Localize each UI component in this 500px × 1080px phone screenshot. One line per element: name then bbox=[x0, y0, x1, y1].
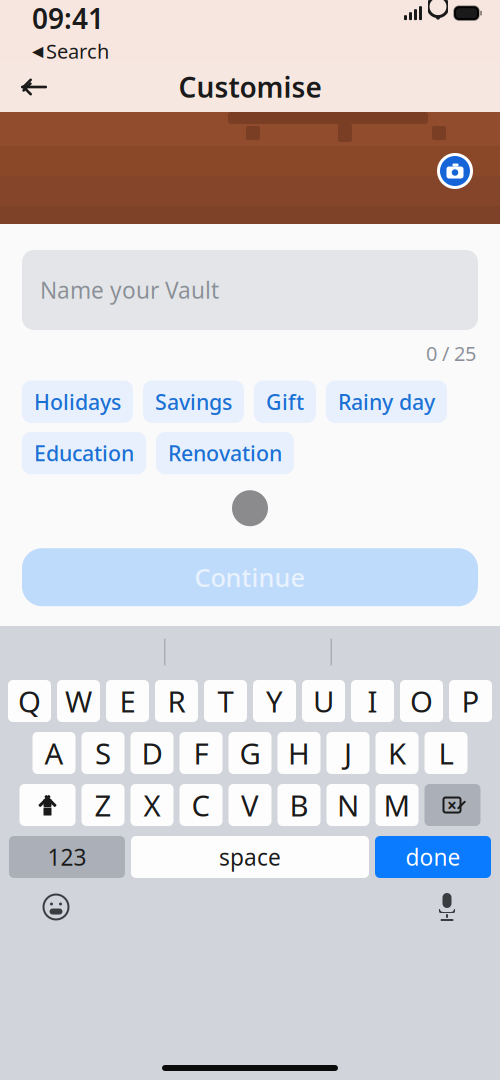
staticText: Q bbox=[18, 681, 41, 720]
staticText: 09:41 bbox=[32, 0, 104, 37]
button[interactable]: Holidays bbox=[22, 381, 133, 423]
staticText: Customise bbox=[178, 68, 321, 106]
staticText: Continue bbox=[194, 560, 305, 594]
staticText: Z bbox=[94, 785, 111, 824]
button[interactable]: U bbox=[302, 680, 345, 722]
staticText: N bbox=[337, 785, 359, 824]
button[interactable]: Name your Vault bbox=[22, 250, 478, 330]
staticText: 0 / 25 bbox=[426, 340, 476, 367]
button[interactable]: Education bbox=[22, 432, 146, 474]
button[interactable]: Z bbox=[81, 784, 124, 826]
button[interactable]: R bbox=[155, 680, 198, 722]
button[interactable]: P bbox=[449, 680, 492, 722]
button[interactable]: Shift bbox=[19, 784, 75, 826]
button[interactable]: Emoji bbox=[42, 893, 70, 921]
staticText: M bbox=[383, 785, 410, 824]
staticText: A bbox=[44, 733, 63, 772]
button[interactable]: D bbox=[130, 732, 173, 774]
staticText: B bbox=[289, 785, 308, 824]
button[interactable]: V bbox=[228, 784, 271, 826]
button[interactable]: Delete bbox=[424, 784, 480, 826]
button[interactable]: E bbox=[106, 680, 149, 722]
button[interactable]: J bbox=[326, 732, 369, 774]
button[interactable]: B bbox=[277, 784, 320, 826]
staticText: Education bbox=[34, 439, 134, 467]
button[interactable]: Savings bbox=[143, 381, 244, 423]
staticText: Rainy day bbox=[338, 388, 435, 416]
button[interactable]: M bbox=[375, 784, 418, 826]
button[interactable]: K bbox=[375, 732, 418, 774]
button[interactable]: W bbox=[57, 680, 100, 722]
staticText: × bbox=[447, 793, 457, 816]
button[interactable]: H bbox=[277, 732, 320, 774]
button[interactable]: F bbox=[179, 732, 222, 774]
staticText: 123 bbox=[47, 842, 86, 872]
button[interactable]: Gift bbox=[254, 381, 316, 423]
button[interactable]: T bbox=[204, 680, 247, 722]
staticText: V bbox=[241, 785, 259, 824]
button[interactable]: Y bbox=[253, 680, 296, 722]
staticText: F bbox=[193, 733, 208, 772]
staticText: E bbox=[119, 681, 135, 720]
button[interactable]: space bbox=[131, 836, 369, 878]
button[interactable]: N bbox=[326, 784, 369, 826]
button[interactable]: Q bbox=[8, 680, 51, 722]
staticText: space bbox=[219, 842, 281, 872]
staticText: D bbox=[141, 733, 162, 772]
button[interactable]: Renovation bbox=[156, 432, 294, 474]
button[interactable]: C bbox=[179, 784, 222, 826]
staticText: Search bbox=[46, 38, 109, 64]
button[interactable]: I bbox=[351, 680, 394, 722]
staticText: H bbox=[288, 733, 310, 772]
button[interactable]: G bbox=[228, 732, 271, 774]
button[interactable]: Dictate bbox=[436, 892, 458, 922]
staticText: done bbox=[405, 842, 460, 872]
button[interactable]: Change photo bbox=[437, 153, 473, 189]
button[interactable]: X bbox=[130, 784, 173, 826]
staticText: Savings bbox=[155, 388, 232, 416]
button[interactable]: Rainy day bbox=[326, 381, 447, 423]
button[interactable]: L bbox=[424, 732, 467, 774]
button[interactable]: O bbox=[400, 680, 443, 722]
staticText: I bbox=[367, 681, 377, 720]
staticText: ◀ bbox=[32, 43, 43, 59]
button[interactable]: A bbox=[32, 732, 75, 774]
staticText: Y bbox=[266, 681, 283, 720]
staticText: X bbox=[143, 785, 160, 824]
button[interactable]: done bbox=[375, 836, 491, 878]
staticText: K bbox=[388, 733, 406, 772]
staticText: G bbox=[239, 733, 260, 772]
button[interactable]: S bbox=[81, 732, 124, 774]
staticText: J bbox=[344, 733, 352, 772]
staticText: T bbox=[217, 681, 233, 720]
staticText: Gift bbox=[266, 388, 304, 416]
staticText: Holidays bbox=[34, 388, 121, 416]
staticText: R bbox=[167, 681, 185, 720]
staticText: W bbox=[65, 681, 92, 720]
button[interactable]: Continue bbox=[22, 548, 478, 606]
staticText: S bbox=[95, 733, 111, 772]
staticText: Renovation bbox=[168, 439, 282, 467]
button[interactable]: Back bbox=[10, 63, 58, 111]
staticText: U bbox=[313, 681, 334, 720]
button[interactable]: 123 bbox=[9, 836, 125, 878]
staticText: C bbox=[191, 785, 210, 824]
staticText: Name your Vault bbox=[40, 275, 219, 305]
staticText: L bbox=[438, 733, 453, 772]
staticText: P bbox=[461, 681, 479, 720]
staticText: O bbox=[410, 681, 433, 720]
